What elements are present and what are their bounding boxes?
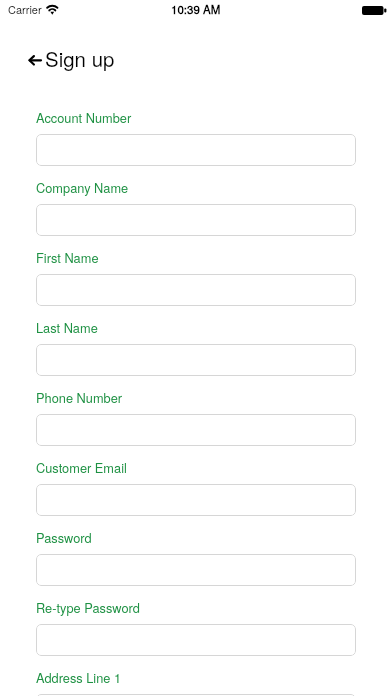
- staticText: Carrier: [8, 1, 42, 17]
- staticText: Last Name: [36, 318, 98, 336]
- button[interactable]: Company Name: [36, 204, 356, 236]
- staticText: First Name: [36, 248, 99, 266]
- button[interactable]: Password: [36, 554, 356, 586]
- other: Wi-Fi signal: [46, 4, 59, 14]
- staticText: Sign up: [45, 43, 115, 72]
- button[interactable]: Last Name: [36, 344, 356, 376]
- staticText: 10:39 AM: [171, 1, 221, 17]
- staticText: Password: [36, 528, 92, 546]
- other: Battery full: [362, 6, 387, 15]
- button[interactable]: Phone Number: [36, 414, 356, 446]
- staticText: Customer Email: [36, 458, 127, 476]
- button[interactable]: Customer Email: [36, 484, 356, 516]
- staticText: Address Line 1: [36, 668, 122, 686]
- staticText: Phone Number: [36, 388, 123, 406]
- button[interactable]: Account Number: [36, 134, 356, 166]
- staticText: Re-type Password: [36, 598, 140, 616]
- button[interactable]: Address Line 1: [36, 694, 356, 696]
- staticText: Account Number: [36, 108, 132, 126]
- button[interactable]: First Name: [36, 274, 356, 306]
- button[interactable]: Re-type Password: [36, 624, 356, 656]
- button[interactable]: Back: [26, 43, 114, 73]
- staticText: Company Name: [36, 178, 129, 196]
